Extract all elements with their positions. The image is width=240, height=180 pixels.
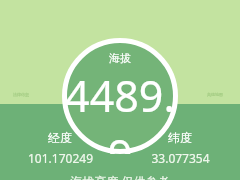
staticText: 经度 <box>48 130 72 145</box>
staticText: 海拔 <box>109 51 131 65</box>
staticText: 高德地图 <box>207 92 223 97</box>
button[interactable]: 海拔高度,仅供参考 <box>0 172 240 180</box>
button[interactable]: 海拔 4489.9 米 <box>62 38 178 154</box>
staticText: 4489.9 <box>62 66 178 154</box>
button[interactable]: 高德地图 <box>207 92 223 97</box>
staticText: 101.170249 <box>28 150 93 166</box>
staticText: 纬度 <box>168 130 192 145</box>
button[interactable]: 经度 <box>0 130 120 166</box>
button[interactable]: 法律信息 <box>13 92 29 97</box>
staticText: 海拔高度,仅供参考 <box>70 173 170 180</box>
staticText: 法律信息 <box>13 92 29 97</box>
staticText: 33.077354 <box>151 150 210 166</box>
button[interactable]: 纬度 <box>120 130 240 166</box>
